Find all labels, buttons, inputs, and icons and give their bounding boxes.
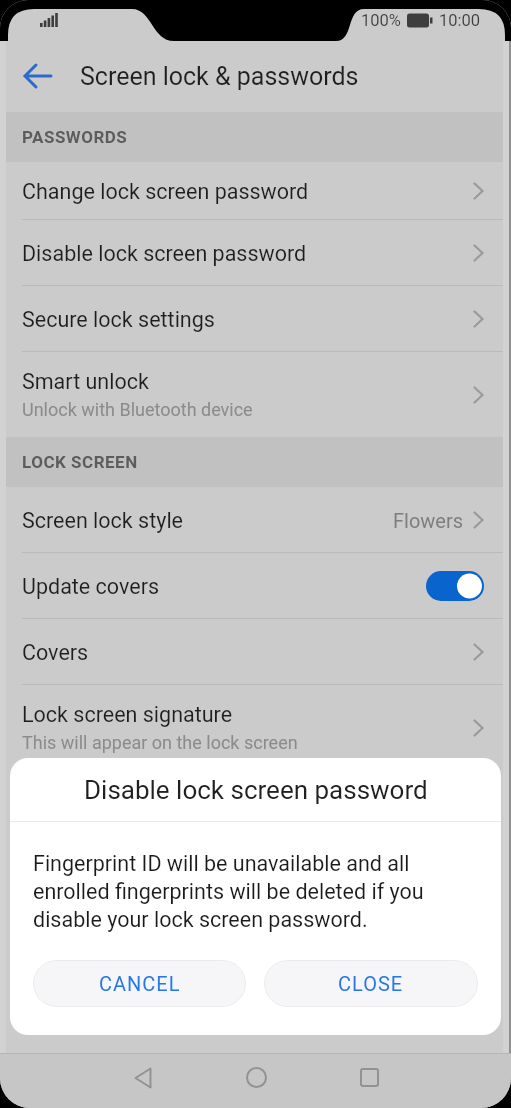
staticText: Update covers [22,574,160,599]
staticText: Secure lock settings [22,307,215,332]
staticText: Smart unlock [22,369,149,394]
staticText: LOCK SCREEN [22,452,138,472]
button[interactable] [426,571,484,601]
staticText: 100% [361,11,401,30]
staticText: PASSWORDS [22,127,128,147]
staticText: Change lock screen password [22,179,309,204]
staticText: Covers [22,640,89,665]
button[interactable]: Covers [0,619,511,685]
staticText: CLOSE [338,972,404,995]
button[interactable]: Smart unlock [0,352,511,437]
button[interactable] [10,40,66,112]
staticText: Disable lock screen password [22,241,307,266]
button[interactable]: Update covers [0,553,511,619]
staticText: 10:00 [439,11,481,30]
staticText: Disable lock screen password [84,775,428,805]
staticText: Screen lock style [22,508,184,533]
staticText: Fingerprint ID will be unavailable and a… [33,851,424,932]
button[interactable] [108,1053,178,1102]
button[interactable]: Change lock screen password [0,162,511,220]
button[interactable]: CLOSE [264,960,478,1007]
staticText: This will appear on the lock screen [22,732,298,753]
button[interactable]: Disable lock screen password [0,220,511,286]
staticText: CANCEL [99,972,181,995]
staticText: Lock screen signature [22,702,233,727]
button[interactable] [221,1053,291,1102]
staticText: Unlock with Bluetooth device [22,399,253,420]
staticText: Flowers [393,509,464,532]
button[interactable] [334,1053,404,1102]
button[interactable]: Lock screen signature [0,685,511,770]
button[interactable]: Screen lock style [0,487,511,553]
staticText: Screen lock & passwords [80,62,359,91]
button[interactable]: CANCEL [33,960,246,1007]
button[interactable]: Secure lock settings [0,286,511,352]
